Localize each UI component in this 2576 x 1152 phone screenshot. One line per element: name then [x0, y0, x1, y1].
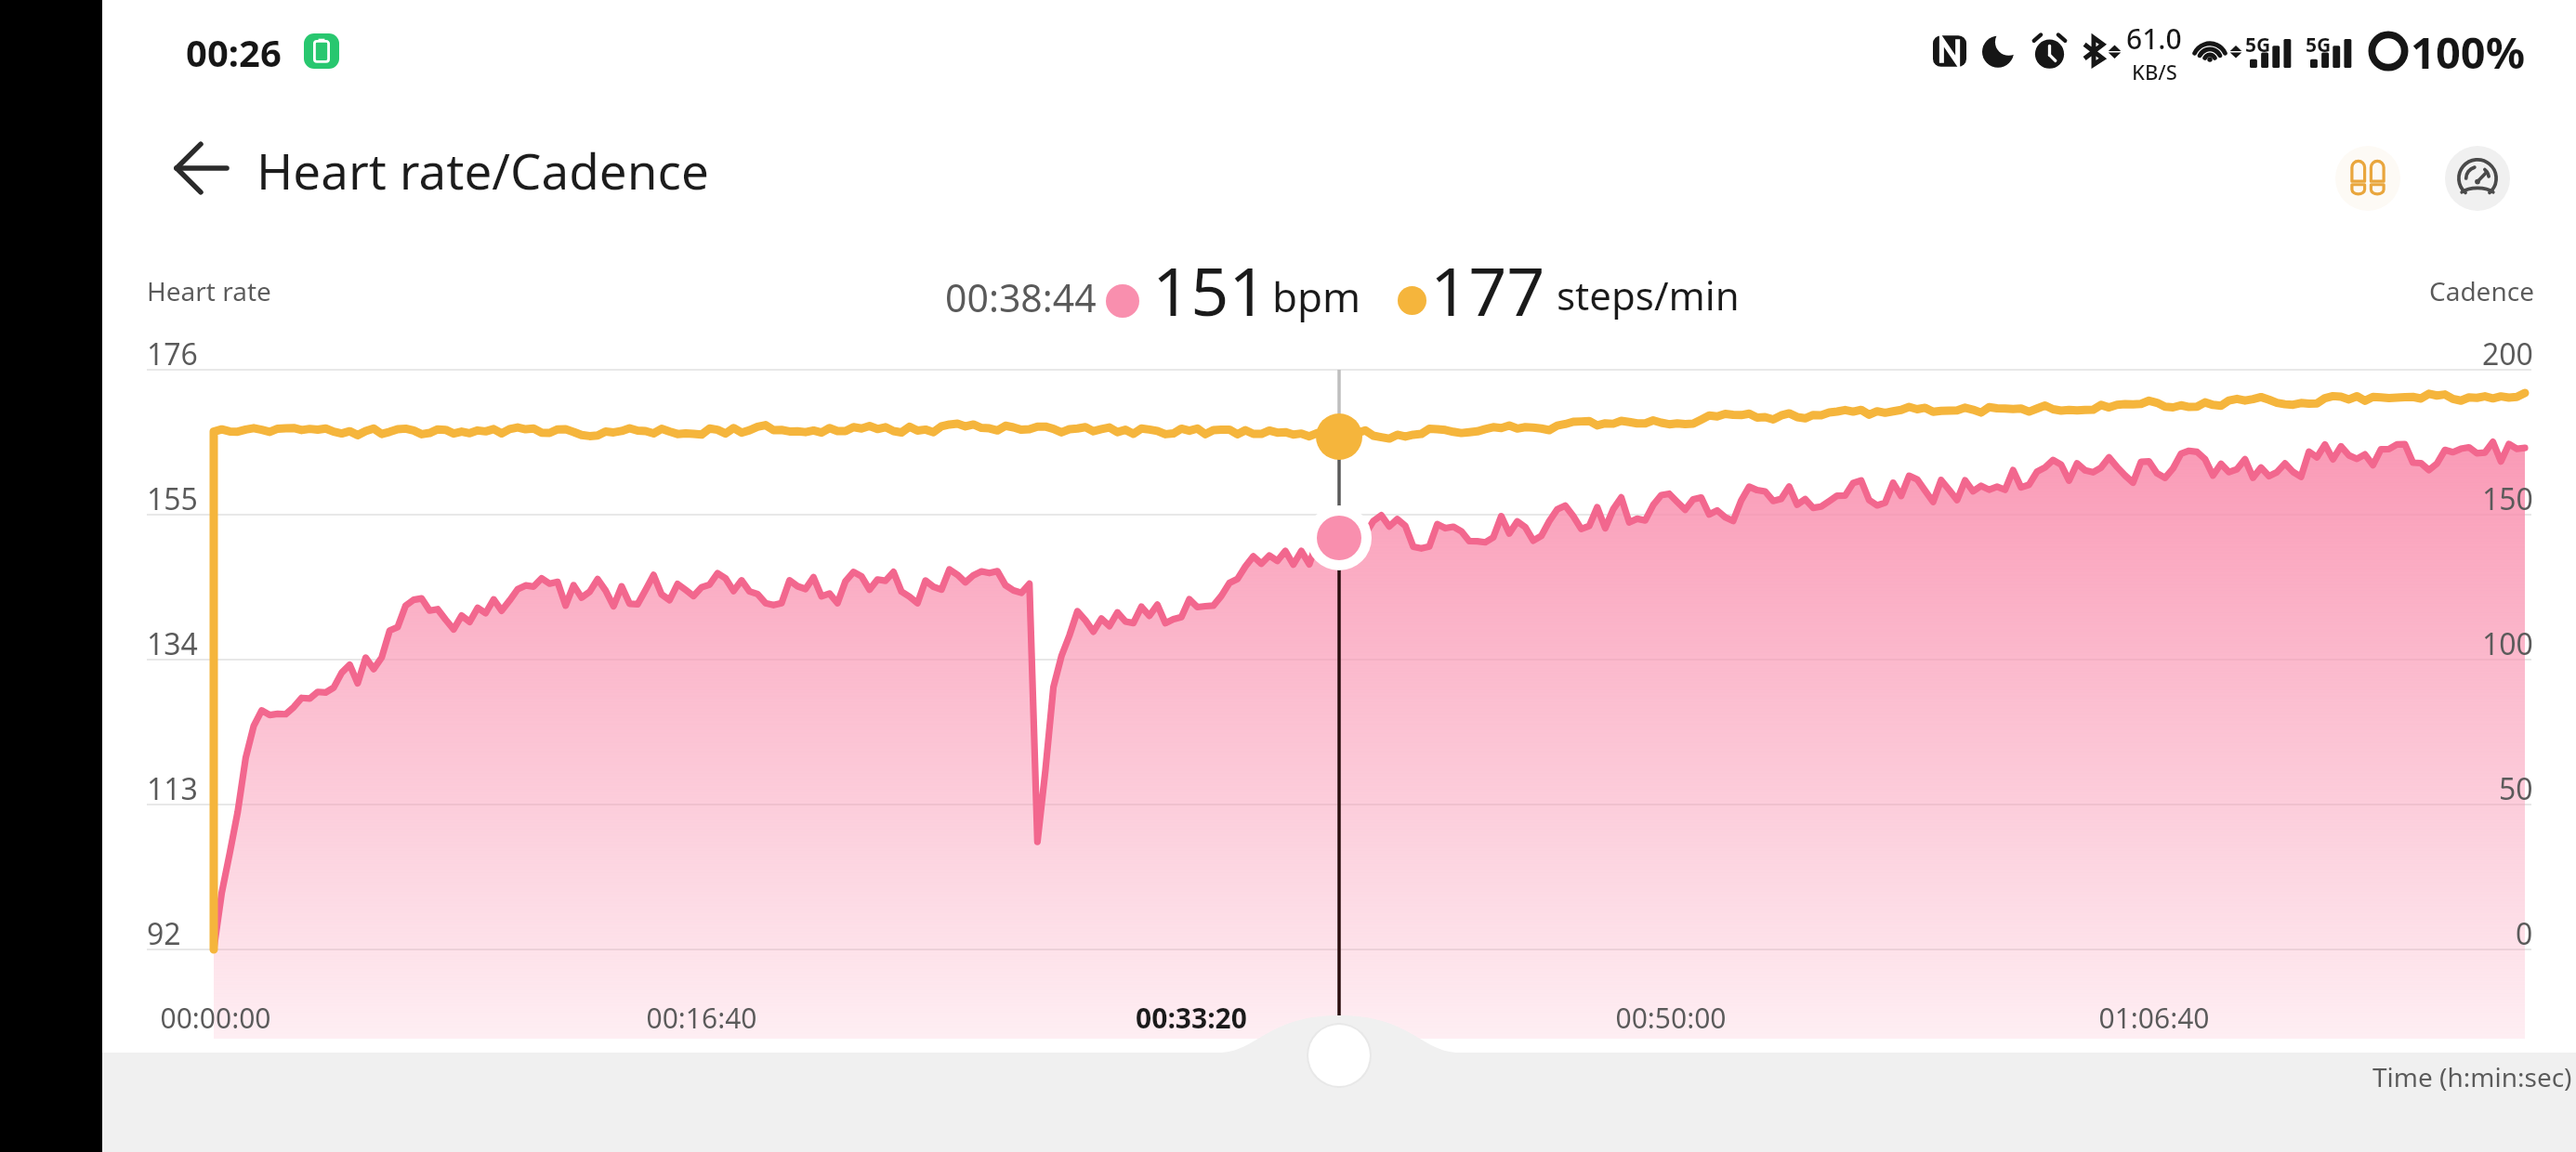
staticText: 92	[147, 913, 181, 954]
staticText: Time (h:min:sec)	[2372, 1059, 2572, 1094]
staticText: 5G	[2306, 32, 2332, 59]
staticText: bpm	[1272, 268, 1361, 324]
button[interactable]: Back	[160, 127, 242, 209]
staticText: 155	[147, 478, 198, 519]
button[interactable]: Cadence	[2335, 146, 2400, 211]
staticText: 0	[2516, 913, 2533, 954]
staticText: 00:00:00	[160, 999, 271, 1037]
staticText: Heart rate/Cadence	[256, 137, 709, 203]
staticText: steps/min	[1557, 268, 1740, 321]
button[interactable]: Speed	[2445, 146, 2510, 211]
staticText: 50	[2499, 768, 2533, 809]
staticText: 200	[2482, 334, 2533, 374]
staticText: 00:33:20	[1136, 999, 1247, 1037]
staticText: 01:06:40	[2098, 999, 2210, 1037]
staticText: Heart rate	[147, 273, 271, 308]
staticText: 177	[1430, 244, 1545, 335]
staticText: KB/S	[2132, 58, 2177, 85]
button[interactable]: Scrub timeline	[1306, 1022, 1373, 1089]
staticText: 176	[147, 334, 198, 374]
staticText: Cadence	[2429, 273, 2534, 308]
staticText: 00:16:40	[646, 999, 757, 1037]
staticText: 00:38:44	[945, 271, 1097, 323]
staticText: 100%	[2411, 22, 2526, 82]
staticText: 5G	[2245, 32, 2271, 59]
staticText: 113	[147, 768, 198, 809]
staticText: 151	[1152, 244, 1268, 335]
staticText: 150	[2482, 478, 2533, 519]
staticText: 61.0	[2126, 20, 2182, 58]
staticText: 00:50:00	[1615, 999, 1727, 1037]
staticText: 00:26	[186, 27, 282, 77]
staticText: 134	[147, 623, 198, 664]
staticText: 100	[2482, 623, 2533, 664]
